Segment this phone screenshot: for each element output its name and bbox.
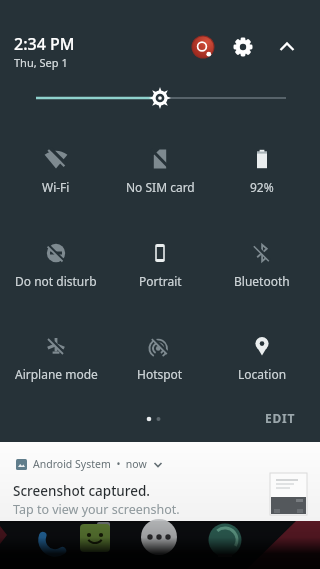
staticText: Thu, Sep 1 <box>14 55 68 70</box>
staticText: 92% <box>250 179 274 195</box>
staticText: Android System <box>33 457 111 471</box>
button[interactable]: Do not disturb <box>4 241 108 307</box>
staticText: • now <box>111 457 153 471</box>
button[interactable] <box>30 84 292 112</box>
button[interactable]: Android System <box>0 442 320 521</box>
staticText: Screenshot captured. <box>13 482 150 500</box>
button[interactable] <box>191 35 215 59</box>
staticText: Portrait <box>139 273 182 289</box>
button[interactable]: 92% <box>210 147 314 213</box>
button[interactable]: Portrait <box>108 241 212 307</box>
button[interactable] <box>231 35 255 59</box>
staticText: No SIM card <box>126 179 195 195</box>
staticText: EDIT <box>265 410 296 426</box>
button[interactable] <box>275 35 299 59</box>
button[interactable]: Wi-Fi <box>4 147 108 213</box>
staticText: Location <box>238 366 287 382</box>
staticText: Hotspot <box>137 366 183 382</box>
staticText: Do not disturb <box>15 273 97 289</box>
staticText: Tap to view your screenshot. <box>13 501 180 518</box>
button[interactable]: No SIM card <box>108 147 212 213</box>
staticText: Airplane mode <box>15 366 98 382</box>
button[interactable]: Airplane mode <box>4 334 108 400</box>
button[interactable]: EDIT <box>256 406 304 430</box>
staticText: 2:34 PM <box>14 33 75 55</box>
staticText: Wi-Fi <box>42 179 70 195</box>
button[interactable]: Bluetooth <box>210 241 314 307</box>
button[interactable]: Location <box>210 334 314 400</box>
button[interactable]: Hotspot <box>108 334 212 400</box>
staticText: Bluetooth <box>234 273 290 289</box>
